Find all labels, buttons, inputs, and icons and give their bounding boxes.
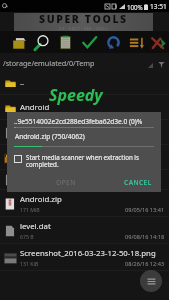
button[interactable]: Android <box>0 95 169 120</box>
staticText: Screenshot_2016-03-23-12-50-18.png <box>20 248 156 259</box>
button[interactable]: Start media scanner when extraction is c… <box>14 153 154 169</box>
staticText: 09/05/16 13:41 <box>125 206 165 214</box>
staticText: Start media scanner when extraction is c… <box>26 153 154 169</box>
staticText: Android.zip <box>20 194 62 205</box>
button[interactable]: Screenshot_2016-03-23-12-50-18.png <box>0 244 169 271</box>
staticText: ZIP · UNZIP · RAR · TOOLS <box>59 27 108 30</box>
staticText: 171 MiB <box>20 206 40 213</box>
staticText: SUPER TOOLS <box>39 12 128 26</box>
button[interactable]: level.dat <box>0 217 169 244</box>
button[interactable]: Close <box>149 31 168 53</box>
button[interactable]: OPEN <box>51 176 81 189</box>
staticText: DCIM <box>20 152 41 163</box>
staticText: ..9e5514002e2cd288ed3feba62d3e.0 (0)% <box>14 117 143 126</box>
staticText: 09/08/16 14:18 <box>125 233 165 241</box>
button[interactable]: .. <box>0 70 169 95</box>
staticText: Speedy <box>49 84 103 106</box>
button[interactable]: backups <box>0 120 169 145</box>
staticText: 13:51 <box>150 2 167 11</box>
button[interactable]: Select all <box>80 31 99 53</box>
staticText: 08/26/16 12:43 <box>125 260 165 268</box>
staticText: 100% <box>127 3 143 11</box>
staticText: 675 B <box>20 233 34 240</box>
staticText: /storage/emulated/0/Temp <box>3 58 95 68</box>
button[interactable]: docs <box>0 170 169 190</box>
staticText: OPEN <box>56 178 76 187</box>
button[interactable]: /storage/emulated/0/Temp <box>0 53 169 71</box>
button[interactable]: New folder <box>9 31 28 53</box>
button[interactable]: Sort <box>127 31 146 53</box>
button[interactable]: Android.zip <box>0 190 169 217</box>
button[interactable]: CANCEL <box>119 176 157 189</box>
staticText: 131 KiB <box>20 260 39 267</box>
staticText: CANCEL <box>124 178 152 187</box>
staticText: .. <box>20 77 25 88</box>
button[interactable]: Search <box>32 31 51 53</box>
staticText: backups <box>20 127 51 138</box>
button[interactable]: Menu <box>140 270 162 292</box>
staticText: Android <box>20 102 50 113</box>
button[interactable]: Refresh <box>104 31 123 53</box>
staticText: level.dat <box>20 221 51 232</box>
button[interactable]: Paste <box>56 31 75 53</box>
button[interactable]: DCIM <box>0 145 169 170</box>
staticText: Android.zip (750/4062) <box>15 132 85 141</box>
